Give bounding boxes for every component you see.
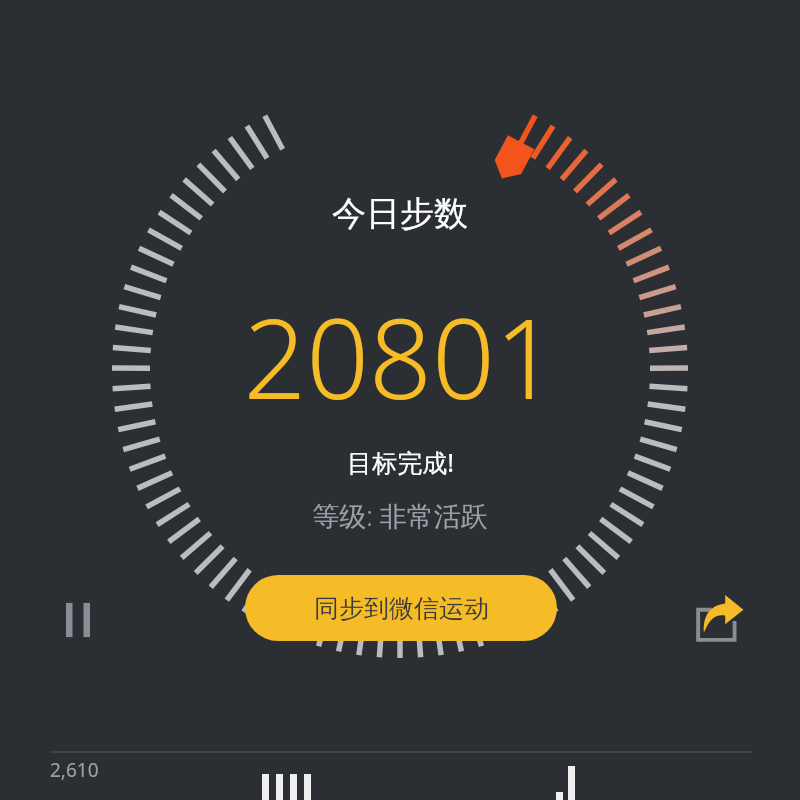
staticText: 目标完成!	[347, 445, 454, 479]
button[interactable]: 同步到微信运动	[245, 575, 557, 641]
button[interactable]: Pause	[46, 588, 110, 652]
staticText: 今日步数	[332, 192, 468, 235]
staticText: 20801	[243, 281, 558, 431]
staticText: 2,610	[50, 757, 99, 783]
button[interactable]: Share	[684, 582, 756, 654]
staticText: 同步到微信运动	[314, 593, 489, 624]
staticText: 等级: 非常活跃	[312, 497, 488, 534]
